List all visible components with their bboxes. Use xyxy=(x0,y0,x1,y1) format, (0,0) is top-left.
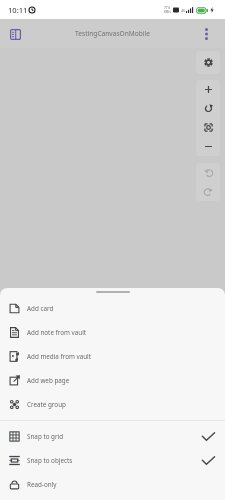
staticText: Snap to objects xyxy=(27,456,73,465)
button[interactable]: Snap to objects xyxy=(0,448,225,472)
staticText: 4G xyxy=(181,8,186,13)
staticText: 77.6 xyxy=(164,6,171,10)
button[interactable]: Read-only xyxy=(0,472,225,496)
button[interactable]: Zoom in xyxy=(196,80,220,99)
button[interactable]: Redo xyxy=(196,182,220,201)
button[interactable]: Add note from vault xyxy=(0,320,225,344)
button[interactable]: Create group xyxy=(0,392,225,416)
staticText: Add media from vault xyxy=(27,352,92,361)
button[interactable]: Add web page xyxy=(0,368,225,392)
button[interactable]: Zoom out xyxy=(196,137,220,156)
staticText: 10:11 xyxy=(8,5,28,15)
staticText: Add web page xyxy=(27,376,70,385)
button[interactable]: Settings xyxy=(196,51,220,74)
staticText: TestingCanvasOnMobile xyxy=(75,29,150,38)
staticText: Create group xyxy=(27,400,66,409)
button[interactable]: Reset zoom xyxy=(196,99,220,118)
button[interactable]: Toggle sidebar xyxy=(4,23,26,45)
staticText: KB/s xyxy=(164,10,171,14)
button[interactable]: Snap to grid xyxy=(0,424,225,448)
button[interactable]: Add media from vault xyxy=(0,344,225,368)
staticText: Read-only xyxy=(27,480,57,489)
button[interactable]: Add card xyxy=(0,296,225,320)
button[interactable]: Fit to screen xyxy=(196,118,220,137)
staticText: Add card xyxy=(27,304,54,313)
staticText: Add note from vault xyxy=(27,328,87,337)
button[interactable]: Undo xyxy=(196,163,220,182)
button[interactable]: More options xyxy=(199,27,213,41)
staticText: Snap to grid xyxy=(27,432,64,441)
